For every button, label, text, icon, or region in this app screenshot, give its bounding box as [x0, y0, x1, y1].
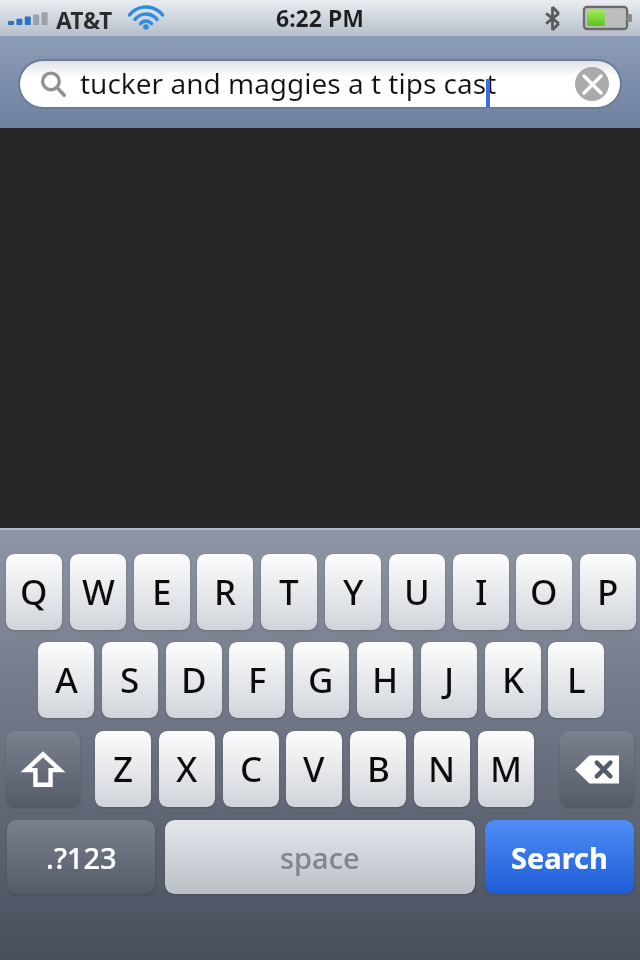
button[interactable]: tucker and maggies a t tips cast	[20, 61, 620, 107]
button[interactable]: H	[357, 642, 413, 718]
button[interactable]: Clear text	[575, 67, 609, 101]
staticText: V	[303, 745, 325, 793]
staticText: K	[502, 656, 525, 704]
button[interactable]: T	[261, 554, 317, 630]
button[interactable]: I	[453, 554, 509, 630]
button[interactable]: W	[70, 554, 126, 630]
staticText: H	[372, 656, 399, 704]
button[interactable]: N	[414, 731, 470, 807]
button[interactable]: Search	[485, 820, 634, 894]
button[interactable]: E	[134, 554, 190, 630]
button[interactable]: .?123	[7, 820, 155, 894]
staticText: X	[176, 745, 198, 793]
button[interactable]: X	[159, 731, 215, 807]
staticText: Search	[511, 838, 608, 877]
staticText: U	[404, 568, 430, 616]
staticText: J	[444, 656, 455, 704]
staticText: P	[597, 568, 619, 616]
staticText: Q	[20, 568, 48, 616]
button[interactable]: R	[197, 554, 253, 630]
button[interactable]: A	[38, 642, 94, 718]
button[interactable]: space	[165, 820, 475, 894]
staticText: S	[120, 656, 140, 704]
staticText: B	[367, 745, 390, 793]
button[interactable]: P	[580, 554, 636, 630]
staticText: A	[55, 656, 78, 704]
button[interactable]: S	[102, 642, 158, 718]
button[interactable]: C	[223, 731, 279, 807]
staticText: C	[240, 745, 263, 793]
button[interactable]: K	[485, 642, 541, 718]
button[interactable]: U	[389, 554, 445, 630]
staticText: W	[82, 568, 115, 616]
button[interactable]: D	[166, 642, 222, 718]
button[interactable]: O	[516, 554, 572, 630]
staticText: F	[248, 656, 267, 704]
button[interactable]: M	[478, 731, 534, 807]
staticText: space	[280, 838, 360, 877]
button[interactable]: Shift	[6, 731, 80, 807]
staticText: E	[152, 568, 172, 616]
button[interactable]: G	[293, 642, 349, 718]
staticText: AT&T	[56, 4, 113, 35]
button[interactable]: L	[548, 642, 604, 718]
button[interactable]: F	[229, 642, 285, 718]
staticText: 6:22 PM	[276, 2, 364, 33]
button[interactable]: Q	[6, 554, 62, 630]
button[interactable]: B	[350, 731, 406, 807]
staticText: O	[530, 568, 558, 616]
staticText: tucker and maggies a t tips cast	[80, 64, 497, 102]
staticText: N	[428, 745, 456, 793]
button[interactable]: Z	[95, 731, 151, 807]
staticText: T	[279, 568, 299, 616]
staticText: D	[181, 656, 207, 704]
button[interactable]: Y	[325, 554, 381, 630]
staticText: L	[567, 656, 586, 704]
button[interactable]: Delete	[560, 731, 634, 807]
staticText: R	[214, 568, 237, 616]
staticText: G	[308, 656, 334, 704]
staticText: I	[475, 568, 488, 616]
staticText: .?123	[46, 838, 117, 877]
button[interactable]: J	[421, 642, 477, 718]
staticText: Z	[113, 745, 134, 793]
staticText: M	[490, 745, 523, 793]
button[interactable]: V	[286, 731, 342, 807]
staticText: Y	[343, 568, 364, 616]
